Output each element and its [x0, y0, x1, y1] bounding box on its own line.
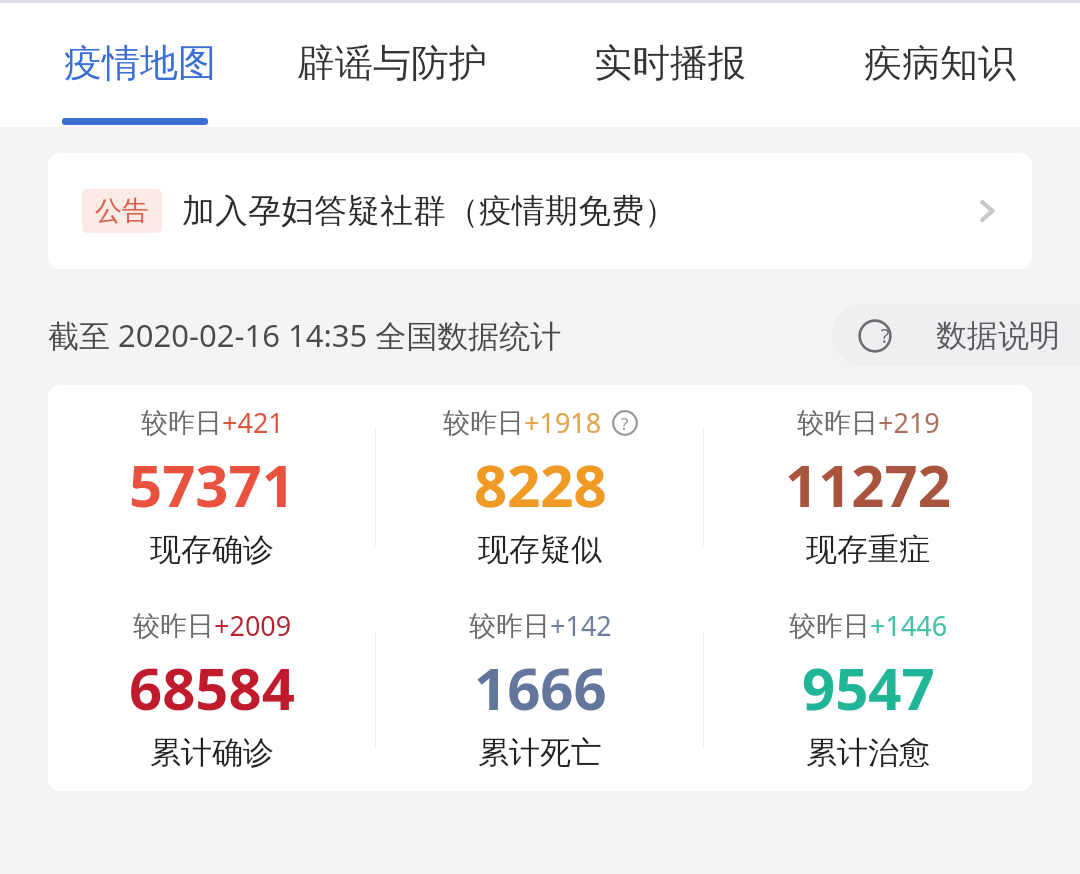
staticText: 68584 [129, 648, 295, 727]
staticText: +142 [550, 607, 612, 644]
staticText: 较昨日 [141, 406, 222, 440]
staticText: 累计死亡 [478, 733, 602, 772]
staticText: +1918 [524, 404, 602, 441]
staticText: ? [621, 412, 629, 435]
staticText: 实时播报 [594, 39, 746, 87]
staticText: 数据说明 [936, 316, 1060, 355]
staticText: +1446 [870, 607, 948, 644]
button[interactable]: ? [832, 304, 1080, 366]
staticText: 较昨日 [789, 609, 870, 643]
staticText: 现存疑似 [478, 530, 602, 569]
staticText: 11272 [785, 445, 951, 524]
staticText: ? [868, 322, 902, 349]
staticText: 疾病知识 [864, 39, 1016, 87]
staticText: 辟谣与防护 [297, 39, 487, 87]
button[interactable]: 较昨日 [48, 588, 376, 791]
button[interactable]: 较昨日 [48, 385, 376, 588]
staticText: 较昨日 [133, 609, 214, 643]
staticText: 累计确诊 [150, 733, 274, 772]
staticText: +219 [878, 404, 940, 441]
staticText: 较昨日 [469, 609, 550, 643]
staticText: 公告 [95, 194, 149, 228]
staticText: 较昨日 [797, 406, 878, 440]
staticText: +2009 [214, 607, 292, 644]
staticText: 加入孕妇答疑社群（疫情期免费） [182, 190, 677, 232]
button[interactable]: 辟谣与防护 [295, 35, 489, 91]
button[interactable]: 较昨日 [376, 385, 704, 588]
staticText: +421 [222, 404, 284, 441]
staticText: 累计治愈 [806, 733, 930, 772]
button[interactable]: 疫情地图 [62, 35, 218, 91]
button[interactable]: 较昨日 [704, 588, 1032, 791]
staticText: 现存重症 [806, 530, 930, 569]
button[interactable]: 疾病知识 [862, 35, 1018, 91]
staticText: 1666 [474, 648, 607, 727]
button[interactable]: 较昨日 [704, 385, 1032, 588]
button[interactable]: 实时播报 [592, 35, 748, 91]
staticText: 疫情地图 [64, 39, 216, 87]
staticText: 较昨日 [443, 406, 524, 440]
staticText: 截至 2020-02-16 14:35 全国数据统计 [48, 314, 562, 356]
staticText: 现存确诊 [150, 530, 274, 569]
button[interactable]: 公告 [48, 153, 1032, 269]
staticText: 8228 [474, 445, 607, 524]
staticText: 57371 [129, 445, 295, 524]
button[interactable]: 较昨日 [376, 588, 704, 791]
staticText: 9547 [802, 648, 935, 727]
